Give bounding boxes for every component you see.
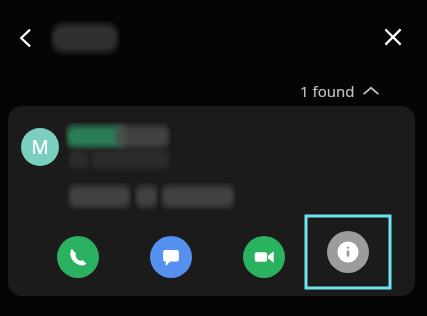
button[interactable]: Video call (243, 236, 285, 278)
button[interactable]: Call (57, 236, 99, 278)
button[interactable]: 1 found (300, 78, 379, 104)
button[interactable]: Back (8, 20, 44, 56)
button[interactable]: Details (306, 216, 390, 288)
staticText: M (31, 134, 49, 160)
button[interactable]: Close (375, 19, 411, 55)
staticText: 1 found (300, 81, 355, 101)
button[interactable]: Message (150, 236, 192, 278)
staticText: Contacts (16, 226, 78, 246)
